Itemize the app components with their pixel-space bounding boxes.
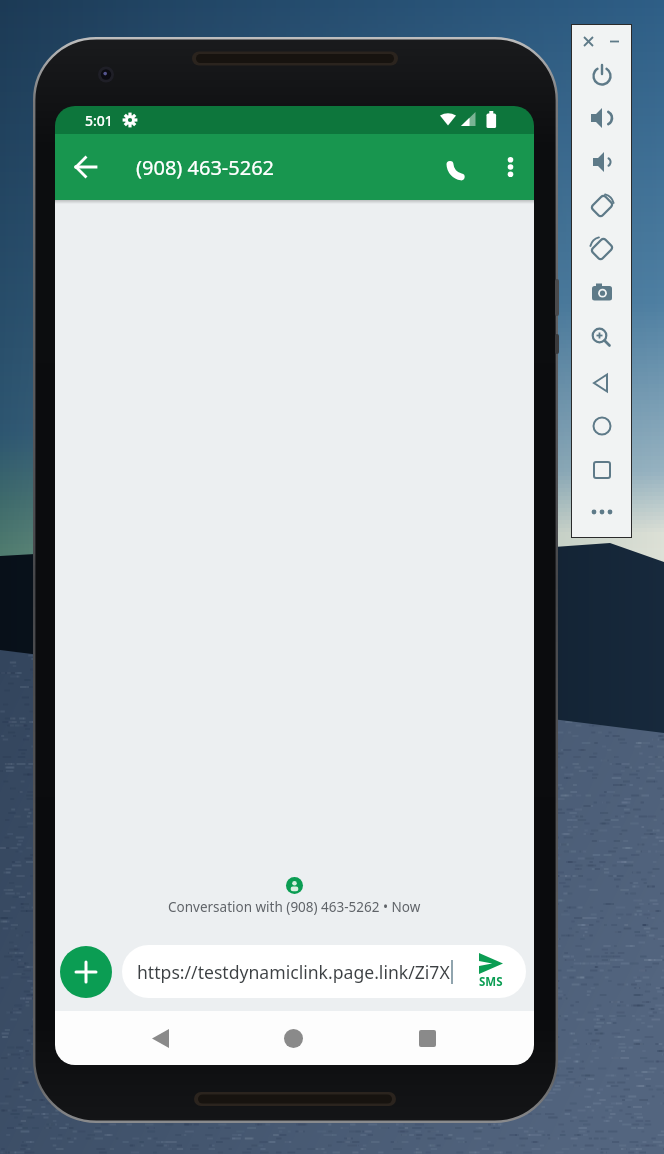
staticText: 5:01: [85, 111, 113, 130]
button[interactable]: [277, 1022, 309, 1054]
button[interactable]: [71, 152, 101, 182]
staticText: Conversation with (908) 463-5262 • Now: [168, 898, 421, 916]
button[interactable]: [572, 445, 631, 487]
button[interactable]: [572, 109, 631, 151]
button[interactable]: [498, 155, 522, 179]
button[interactable]: [572, 193, 631, 235]
button[interactable]: SMS: [479, 953, 503, 990]
staticText: (908) 463-5262: [136, 154, 275, 181]
button[interactable]: [572, 67, 631, 109]
button[interactable]: [572, 151, 631, 193]
button[interactable]: [411, 1022, 443, 1054]
button[interactable]: https://testdynamiclink.page.link/Zi7X: [122, 945, 526, 998]
button[interactable]: [572, 361, 631, 403]
staticText: https://testdynamiclink.page.link/Zi7X: [137, 960, 450, 984]
button[interactable]: [572, 235, 631, 277]
button[interactable]: [572, 25, 631, 67]
staticText: SMS: [479, 974, 503, 990]
button[interactable]: [448, 149, 484, 185]
button[interactable]: [572, 403, 631, 445]
button[interactable]: [572, 277, 631, 319]
button[interactable]: [60, 946, 112, 998]
button[interactable]: [572, 487, 631, 529]
button[interactable]: [572, 319, 631, 361]
button[interactable]: [144, 1022, 176, 1054]
